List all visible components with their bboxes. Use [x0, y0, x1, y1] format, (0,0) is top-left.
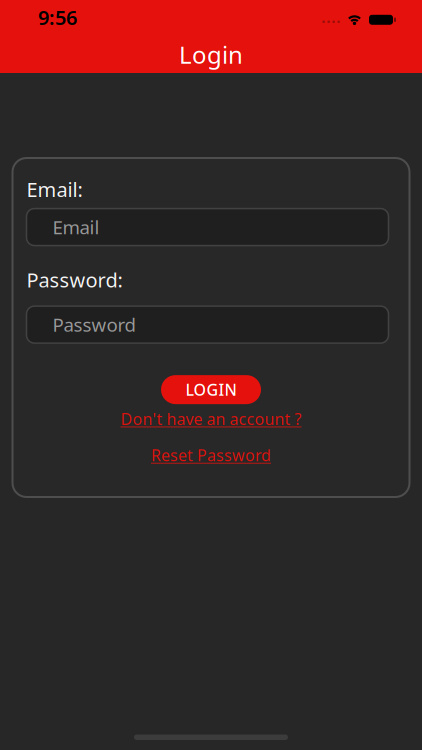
staticText: Reset Password: [151, 444, 271, 466]
staticText: Don't have an account ?: [120, 408, 301, 429]
button[interactable]: Don't have an account ?: [120, 408, 301, 429]
staticText: Password:: [26, 267, 122, 293]
staticText: LOGIN: [185, 379, 236, 400]
staticText: Password: [52, 312, 135, 337]
button[interactable]: Reset Password: [151, 444, 271, 466]
button[interactable]: LOGIN: [161, 375, 261, 404]
staticText: Login: [179, 39, 243, 70]
staticText: 9:56: [38, 4, 77, 31]
staticText: Email:: [26, 176, 82, 203]
button[interactable]: Email: [26, 209, 388, 246]
staticText: Email: [52, 215, 99, 239]
button[interactable]: Password: [26, 306, 388, 343]
